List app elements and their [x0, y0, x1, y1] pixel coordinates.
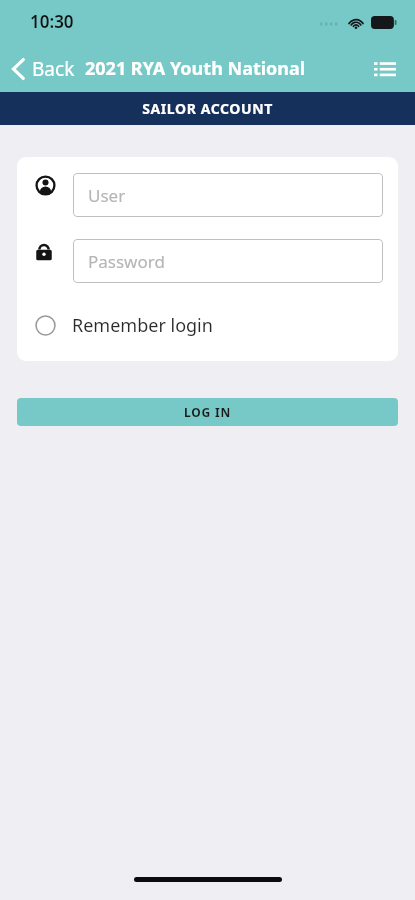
staticText: SAILOR ACCOUNT — [142, 99, 273, 118]
button[interactable]: LOG IN — [17, 398, 398, 426]
staticText: 2021 RYA Youth National Cham — [85, 56, 355, 81]
staticText: Back — [32, 56, 75, 82]
staticText: Remember login — [72, 313, 213, 338]
button[interactable]: Remember login — [17, 309, 398, 342]
staticText: Password — [88, 250, 165, 273]
button[interactable]: Back — [7, 52, 79, 86]
staticText: LOG IN — [184, 404, 231, 420]
button[interactable]: User — [73, 173, 383, 217]
staticText: User — [88, 184, 126, 207]
button[interactable]: Password — [73, 239, 383, 283]
button[interactable]: Menu — [363, 47, 407, 91]
staticText: 10:30 — [30, 10, 74, 33]
